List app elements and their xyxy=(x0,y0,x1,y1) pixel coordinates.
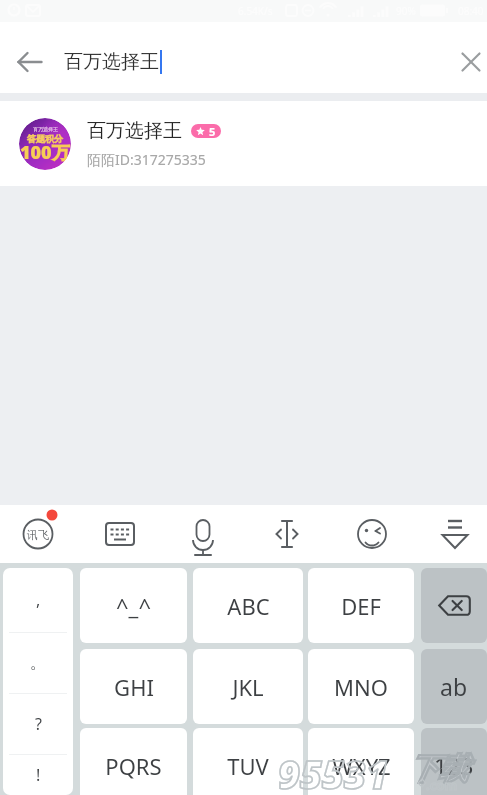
staticText: 陌陌ID:317275335 xyxy=(87,150,206,169)
button[interactable]: Clear xyxy=(449,40,487,84)
button[interactable]: Hide keyboard xyxy=(414,505,487,563)
staticText: GHI xyxy=(114,672,154,702)
staticText: ! xyxy=(36,764,41,786)
staticText: , xyxy=(36,589,41,611)
staticText: 123 xyxy=(434,750,474,781)
staticText: JKL xyxy=(232,672,264,702)
button[interactable]: PQRS xyxy=(80,728,187,795)
button[interactable]: Back xyxy=(8,40,52,84)
staticText: 百万选择王 xyxy=(33,126,58,132)
staticText: MNO xyxy=(334,672,388,702)
staticText: ab xyxy=(440,671,468,702)
button[interactable]: DEF xyxy=(308,568,414,643)
button[interactable]: ? xyxy=(3,694,73,754)
button[interactable]: 。 xyxy=(3,633,73,693)
staticText: TUV xyxy=(227,751,269,781)
button[interactable]: 123 xyxy=(421,728,487,795)
staticText: 答题积分 xyxy=(27,133,63,144)
staticText: DEF xyxy=(341,591,381,621)
staticText: 百万选择王 xyxy=(87,119,182,143)
button[interactable]: Move cursor xyxy=(245,505,329,563)
button[interactable]: TUV xyxy=(193,728,303,795)
button[interactable]: , xyxy=(3,568,73,632)
staticText: 5 xyxy=(209,124,216,138)
button[interactable]: ABC xyxy=(193,568,303,643)
button[interactable]: MNO xyxy=(308,649,414,724)
button[interactable]: 百万选择王 xyxy=(0,101,487,186)
staticText: WXYZ xyxy=(332,751,391,781)
button[interactable]: ^_^ xyxy=(80,568,187,643)
staticText: ^_^ xyxy=(116,591,151,621)
staticText: ABC xyxy=(227,591,270,621)
staticText: ? xyxy=(35,713,42,735)
staticText: 100万 xyxy=(20,140,70,165)
button[interactable]: Voice input xyxy=(162,505,244,563)
button[interactable]: Input method xyxy=(0,505,76,563)
staticText: 百万选择王 xyxy=(64,50,159,74)
button[interactable]: Emoji xyxy=(330,505,413,563)
staticText: PQRS xyxy=(105,751,162,781)
button[interactable]: Delete xyxy=(421,568,487,643)
staticText: 。 xyxy=(30,653,46,673)
button[interactable]: WXYZ xyxy=(308,728,414,795)
button[interactable]: JKL xyxy=(193,649,303,724)
button[interactable]: ! xyxy=(3,755,73,795)
button[interactable]: Keyboard layout xyxy=(78,505,162,563)
button[interactable]: GHI xyxy=(80,649,187,724)
staticText: 讯飞 xyxy=(27,528,49,542)
button[interactable]: ab xyxy=(421,649,487,724)
